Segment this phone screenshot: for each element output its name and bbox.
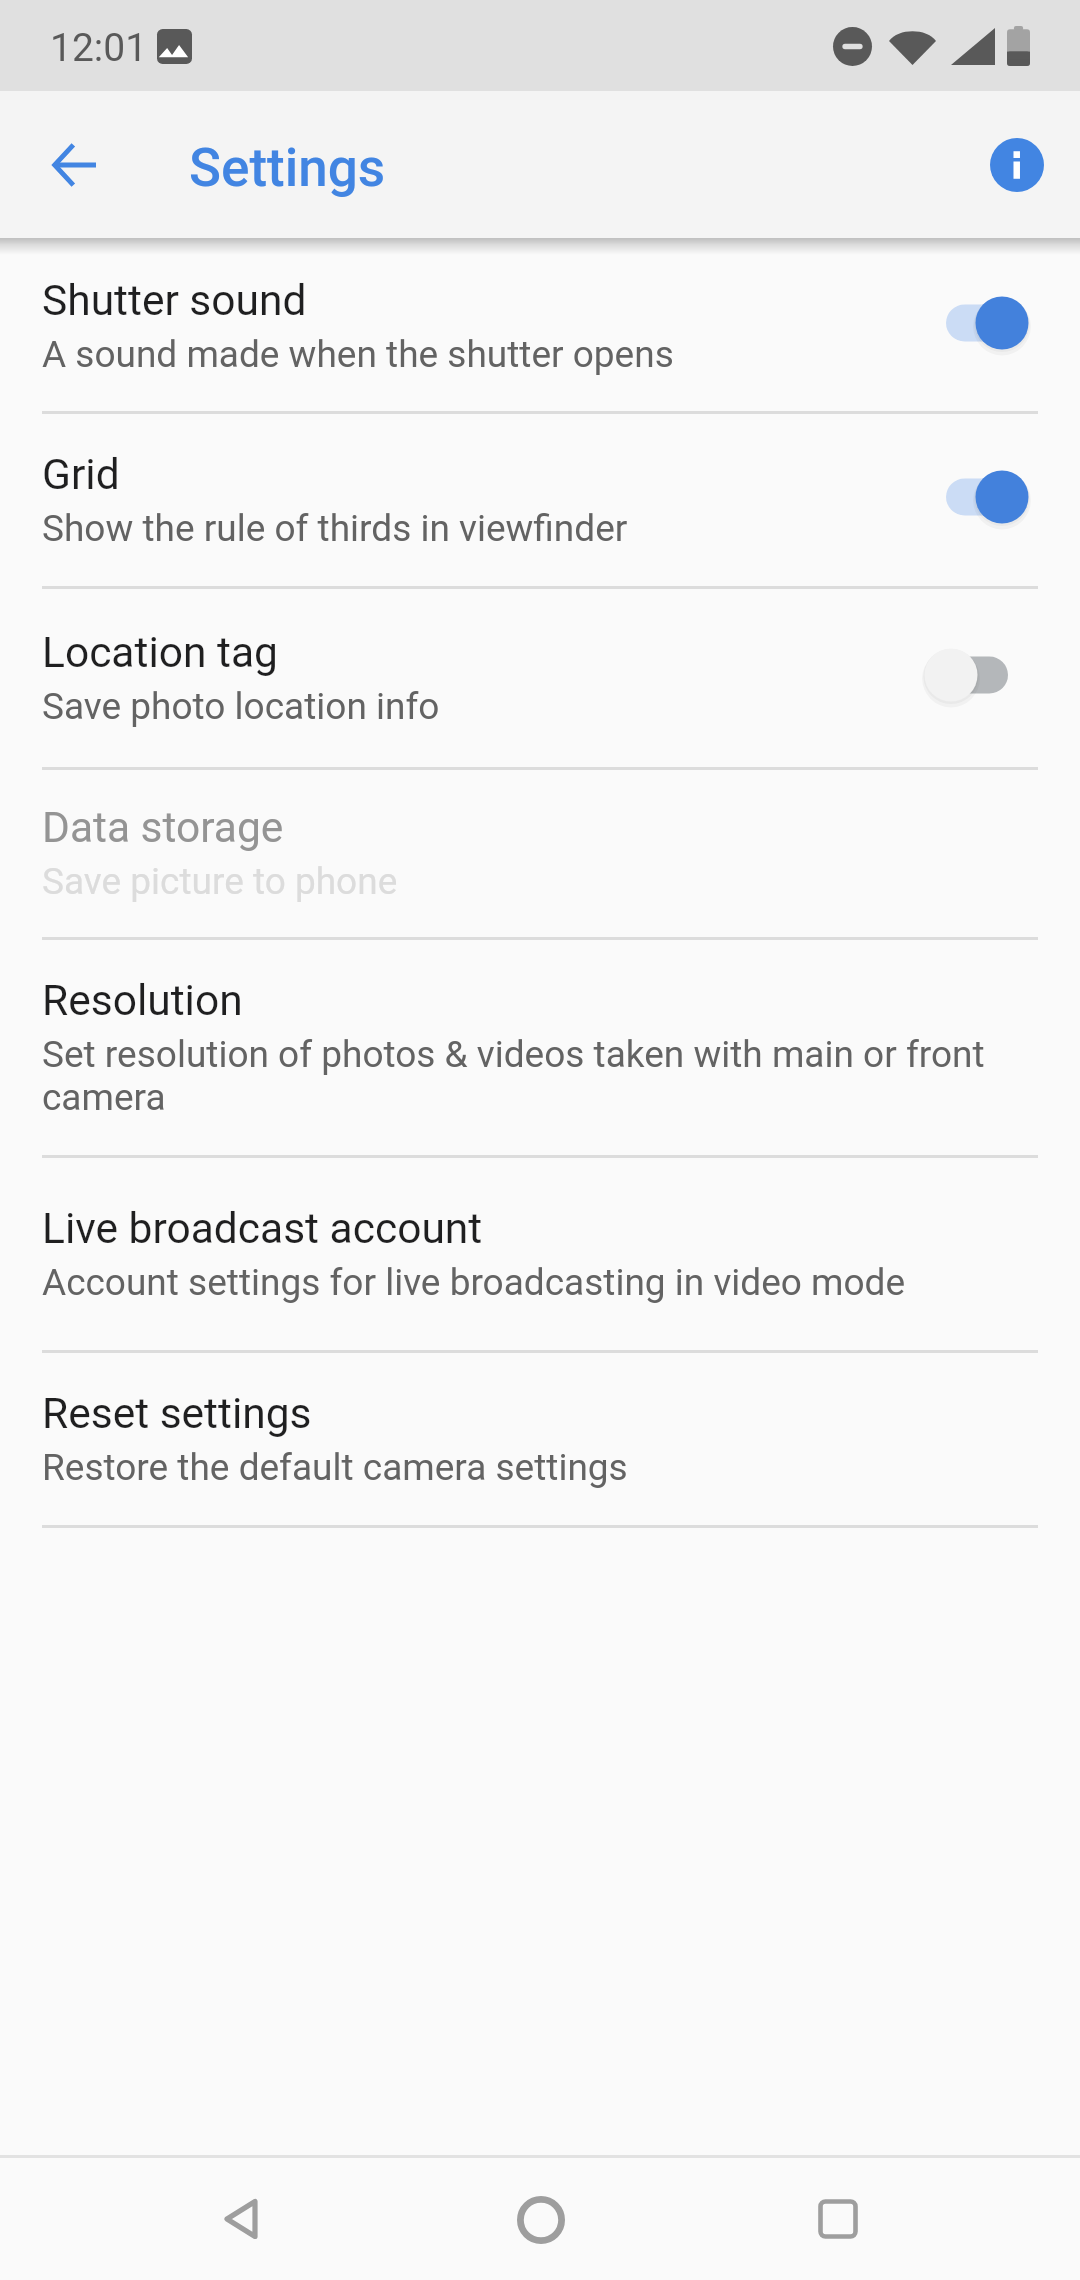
staticText: Settings [189,137,386,199]
button[interactable]: Location tag toggle [900,620,1050,730]
staticText: A sound made when the shutter opens [42,333,674,376]
staticText: 12:01 [50,25,148,71]
staticText: Resolution [42,976,243,1026]
button[interactable]: Shutter sound [0,241,1080,414]
button[interactable]: Shutter sound toggle [900,268,1050,378]
staticText: Live broadcast account [42,1204,483,1254]
button[interactable]: Location tag [0,589,1080,770]
button[interactable]: Back [181,2158,301,2280]
staticText: Save picture to phone [42,860,398,903]
button[interactable]: Reset settings [0,1353,1080,1528]
button[interactable]: Info [969,117,1065,213]
staticText: Set resolution of photos & videos taken … [42,1033,1036,1119]
button[interactable]: Data storage [0,770,1080,940]
staticText: Shutter sound [42,276,307,326]
staticText: Grid [42,450,120,500]
button[interactable]: Recents [778,2158,898,2280]
staticText: Save photo location info [42,685,440,728]
staticText: Account settings for live broadcasting i… [42,1261,906,1304]
button[interactable]: Back [27,117,123,213]
staticText: Reset settings [42,1389,312,1439]
staticText: Restore the default camera settings [42,1446,628,1489]
button[interactable]: Grid toggle [900,442,1050,552]
button[interactable]: Home [480,2158,600,2280]
staticText: Location tag [42,628,278,678]
button[interactable]: Grid [0,414,1080,589]
button[interactable]: Live broadcast account [0,1158,1080,1353]
button[interactable]: Resolution [0,940,1080,1158]
staticText: Data storage [42,803,284,853]
staticText: Show the rule of thirds in viewfinder [42,507,628,550]
